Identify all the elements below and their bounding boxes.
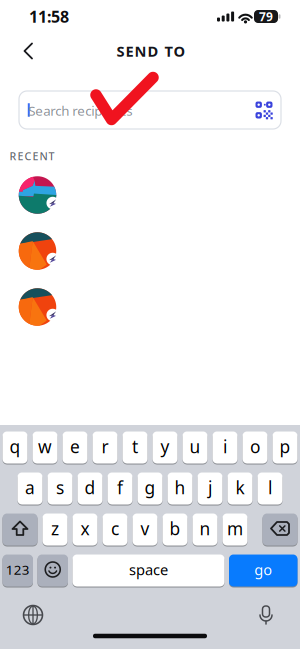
button[interactable]: Recent recipient 3 [16,286,58,328]
button[interactable]: h [167,472,192,505]
button[interactable]: Back [14,34,41,67]
staticText: 11:58 [29,6,69,27]
staticText: d [84,476,95,499]
staticText: q [9,435,20,458]
button[interactable]: w [32,431,57,464]
staticText: u [189,435,200,458]
staticText: a [25,476,35,499]
staticText: x [80,517,89,540]
staticText: l [268,476,272,499]
button[interactable]: d [77,472,102,505]
staticText: r [101,435,108,458]
button[interactable]: e [62,431,87,464]
staticText: o [250,435,260,458]
staticText: j [208,476,212,499]
staticText: space [129,560,168,579]
staticText: k [235,476,244,499]
button[interactable]: Shift [2,513,37,546]
staticText: 79 [259,8,273,24]
button[interactable]: Next keyboard [23,605,42,624]
staticText: S E N D T O [116,41,185,61]
staticText: f [117,476,123,499]
staticText: i [223,435,227,458]
button[interactable]: t [122,431,147,464]
button[interactable]: b [162,513,187,546]
button[interactable]: o [242,431,267,464]
staticText: t [132,435,138,458]
button[interactable]: u [182,431,207,464]
staticText: R E C E N T [9,149,54,163]
staticText: b [169,517,180,540]
button[interactable]: v [132,513,157,546]
button[interactable]: Dictation [258,605,273,624]
staticText: w [38,435,52,458]
button[interactable]: Search recipients [19,91,281,129]
button[interactable]: g [137,472,162,505]
button[interactable]: Recent recipient 1 [16,174,58,216]
button[interactable]: Scan QR code [249,95,278,124]
button[interactable]: p [272,431,297,464]
button[interactable]: Numbers [2,554,33,587]
button[interactable]: q [2,431,27,464]
button[interactable]: m [222,513,247,546]
button[interactable]: x [72,513,97,546]
button[interactable]: l [257,472,282,505]
button[interactable]: j [197,472,222,505]
button[interactable]: k [227,472,252,505]
button[interactable]: y [152,431,177,464]
button[interactable]: Emoji [37,554,68,587]
button[interactable]: r [92,431,117,464]
button[interactable]: s [47,472,72,505]
button[interactable]: a [17,472,42,505]
button[interactable]: i [212,431,237,464]
staticText: p [279,435,290,458]
staticText: v [140,517,149,540]
button[interactable]: c [102,513,127,546]
staticText: go [254,560,272,579]
staticText: 123 [6,561,30,578]
button[interactable]: Delete [262,513,297,546]
staticText: h [174,476,185,499]
staticText: Search recipients [28,102,132,119]
staticText: m [227,517,243,540]
button[interactable]: go [229,554,297,587]
button[interactable]: n [192,513,217,546]
button[interactable]: f [107,472,132,505]
staticText: s [56,476,64,499]
staticText: g [144,476,155,499]
staticText: z [51,517,59,540]
staticText: y [160,435,169,458]
button[interactable]: Recent recipient 2 [16,230,58,272]
button[interactable]: z [42,513,67,546]
staticText: e [70,435,80,458]
staticText: n [199,517,210,540]
staticText: c [111,517,119,540]
button[interactable]: space [72,554,224,587]
